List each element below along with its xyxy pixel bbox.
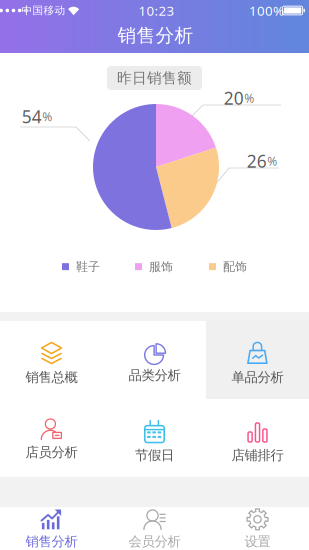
button[interactable]: 品类分析 — [103, 321, 206, 399]
staticText: 鞋子 — [76, 259, 100, 274]
staticText: 品类分析 — [128, 367, 180, 383]
staticText: 会员分析 — [128, 533, 180, 550]
staticText: 单品分析 — [231, 369, 283, 385]
staticText: 店铺排行 — [231, 447, 283, 463]
staticText: 销售总概 — [25, 369, 77, 385]
button[interactable]: 店员分析 — [0, 399, 103, 477]
staticText: 配饰 — [223, 259, 247, 274]
staticText: 100% — [249, 2, 284, 19]
staticText: 销售分析 — [25, 533, 77, 550]
staticText: 节假日 — [135, 447, 174, 463]
button[interactable]: 单品分析 — [206, 321, 309, 399]
staticText: 服饰 — [149, 259, 173, 274]
staticText: 26 — [247, 149, 267, 172]
button[interactable]: 销售总概 — [0, 321, 103, 399]
staticText: 中国移动 — [21, 4, 65, 17]
button[interactable]: 会员分析 — [103, 507, 206, 550]
staticText: 54 — [22, 105, 42, 128]
staticText: 昨日销售额 — [117, 69, 192, 87]
staticText: % — [267, 153, 277, 169]
button[interactable]: 销售分析 — [0, 507, 103, 550]
staticText: % — [42, 108, 52, 124]
button[interactable]: 设置 — [206, 507, 309, 550]
button[interactable]: 节假日 — [103, 399, 206, 477]
staticText: 20 — [224, 86, 244, 109]
staticText: 10:23 — [138, 2, 174, 19]
staticText: 销售分析 — [117, 24, 193, 47]
staticText: % — [244, 90, 254, 106]
staticText: 设置 — [244, 533, 270, 550]
button[interactable]: 店铺排行 — [206, 399, 309, 477]
staticText: 店员分析 — [25, 444, 77, 460]
